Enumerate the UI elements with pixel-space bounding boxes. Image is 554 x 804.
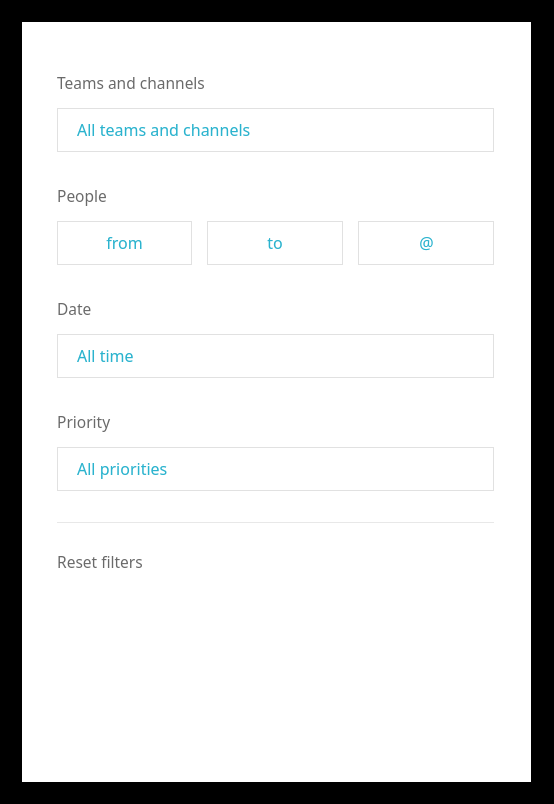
staticText: from [106,232,143,254]
staticText: Teams and channels [57,72,205,93]
staticText: Reset filters [57,551,143,572]
staticText: Priority [57,411,111,432]
staticText: All teams and channels [77,119,251,141]
staticText: All time [77,345,134,367]
button[interactable]: Reset filters [57,549,494,573]
button[interactable]: from [57,221,192,265]
staticText: to [267,232,283,254]
button[interactable]: All time [57,334,494,378]
staticText: All priorities [77,458,168,480]
staticText: @ [419,232,434,254]
button[interactable]: All priorities [57,447,494,491]
staticText: Date [57,298,92,319]
button[interactable]: Mentions [358,221,494,265]
button[interactable]: to [207,221,343,265]
staticText: People [57,185,107,206]
button[interactable]: All teams and channels [57,108,494,152]
